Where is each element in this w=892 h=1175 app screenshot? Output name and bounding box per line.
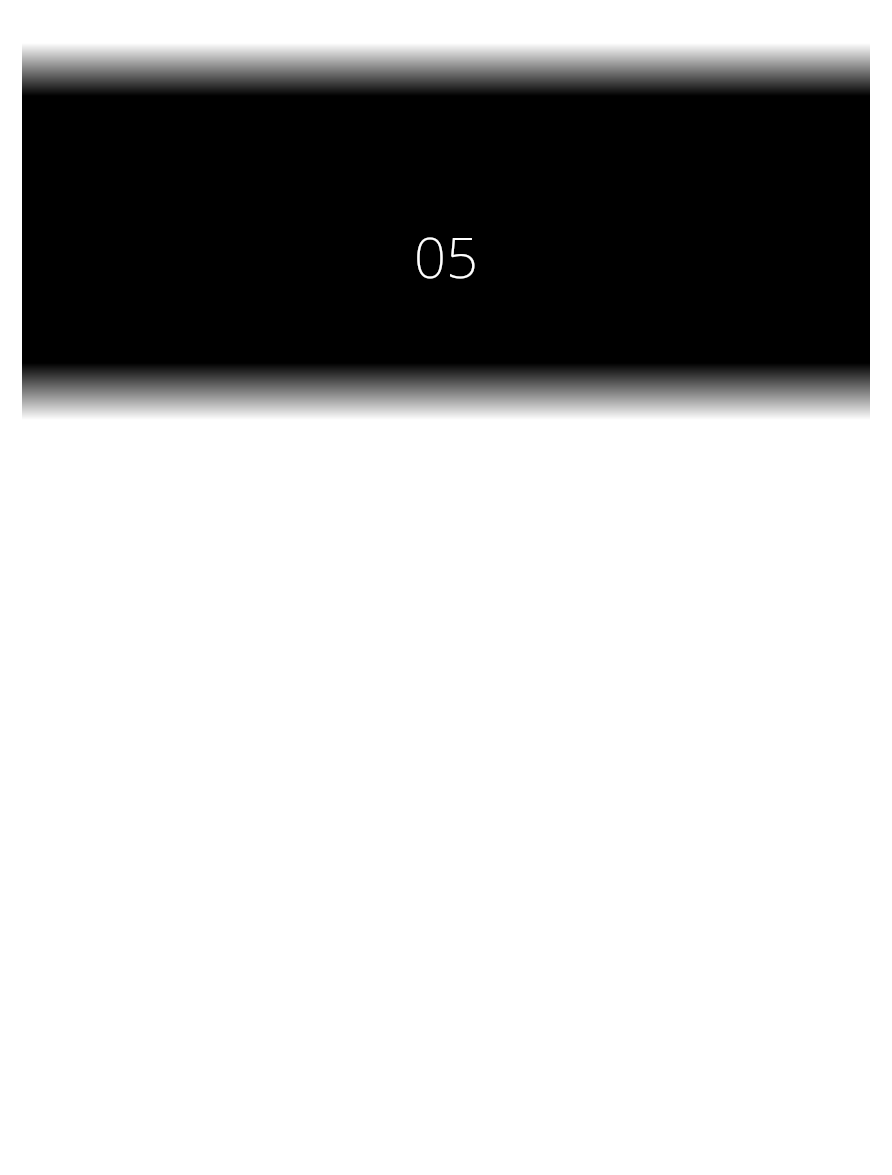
button[interactable]: Selected value 05 [346, 203, 546, 275]
staticText: 05 [346, 218, 546, 290]
